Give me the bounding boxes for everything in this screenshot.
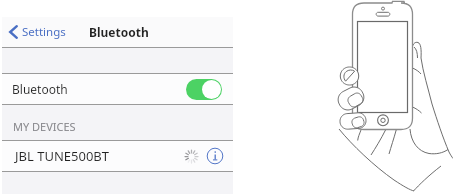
staticText: Bluetooth [89, 24, 149, 40]
button[interactable]: Bluetooth [2, 74, 233, 104]
button[interactable]: JBL TUNE500BT [2, 141, 233, 171]
button[interactable]: Bluetooth on [186, 79, 222, 100]
staticText: JBL TUNE500BT [15, 147, 110, 165]
button[interactable]: Settings [9, 17, 66, 47]
button[interactable]: Device info [206, 147, 224, 165]
staticText: Settings [22, 24, 66, 40]
staticText: MY DEVICES [13, 119, 76, 134]
staticText: Bluetooth [12, 81, 68, 97]
